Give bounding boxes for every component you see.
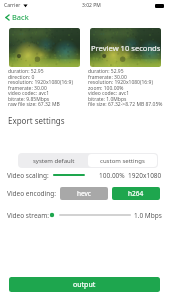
staticText: framerate: 30.00	[8, 85, 47, 92]
staticText: system default	[33, 157, 75, 165]
button[interactable]: system default	[19, 154, 88, 167]
staticText: 100.00% 1920x1080	[99, 171, 162, 180]
button[interactable]: output	[9, 277, 160, 292]
staticText: bitrate: 9.85Mbps	[8, 96, 50, 103]
staticText: custom settings	[100, 157, 145, 165]
staticText: output	[73, 280, 96, 290]
staticText: Video scaling:	[7, 171, 49, 180]
staticText: file size: 67.32->8.72 MB 87.05%	[88, 101, 163, 108]
staticText: hevc	[77, 189, 91, 198]
staticText: Carrier	[4, 2, 21, 9]
button[interactable]: Video stream slider	[50, 209, 132, 221]
staticText: resolution: 1920x1080(16:9)	[8, 79, 73, 86]
staticText: 3:02 PM	[82, 2, 101, 9]
button[interactable]: custom settings	[88, 154, 157, 167]
staticText: Preview 10 seconds	[91, 43, 161, 53]
staticText: Video stream:	[7, 211, 50, 220]
staticText: duration: 52.95	[8, 68, 44, 75]
staticText: h264	[128, 189, 144, 198]
staticText: bitrate: 1.0Mbps	[88, 96, 127, 103]
staticText: 1.0 Mbps	[134, 211, 162, 220]
staticText: Export settings	[8, 115, 65, 126]
staticText: direction: 0	[8, 74, 35, 81]
staticText: framerate: 30.00	[88, 74, 127, 81]
staticText: resolution: 1920x1080(16:9)	[88, 79, 153, 86]
staticText: video codec: avc1	[8, 90, 50, 97]
button[interactable]: Video scaling slider	[49, 169, 93, 181]
button[interactable]: h264	[112, 187, 160, 200]
staticText: duration: 52.95	[88, 68, 124, 75]
button[interactable]: hevc	[60, 187, 108, 200]
staticText: Back	[12, 12, 29, 22]
staticText: zoom: 100.00%	[88, 85, 124, 92]
staticText: video codec: avc1	[88, 90, 130, 97]
button[interactable]: Back	[2, 11, 31, 23]
staticText: raw file size: 67.32 MB	[8, 101, 60, 108]
staticText: Video encoding:	[7, 189, 57, 198]
